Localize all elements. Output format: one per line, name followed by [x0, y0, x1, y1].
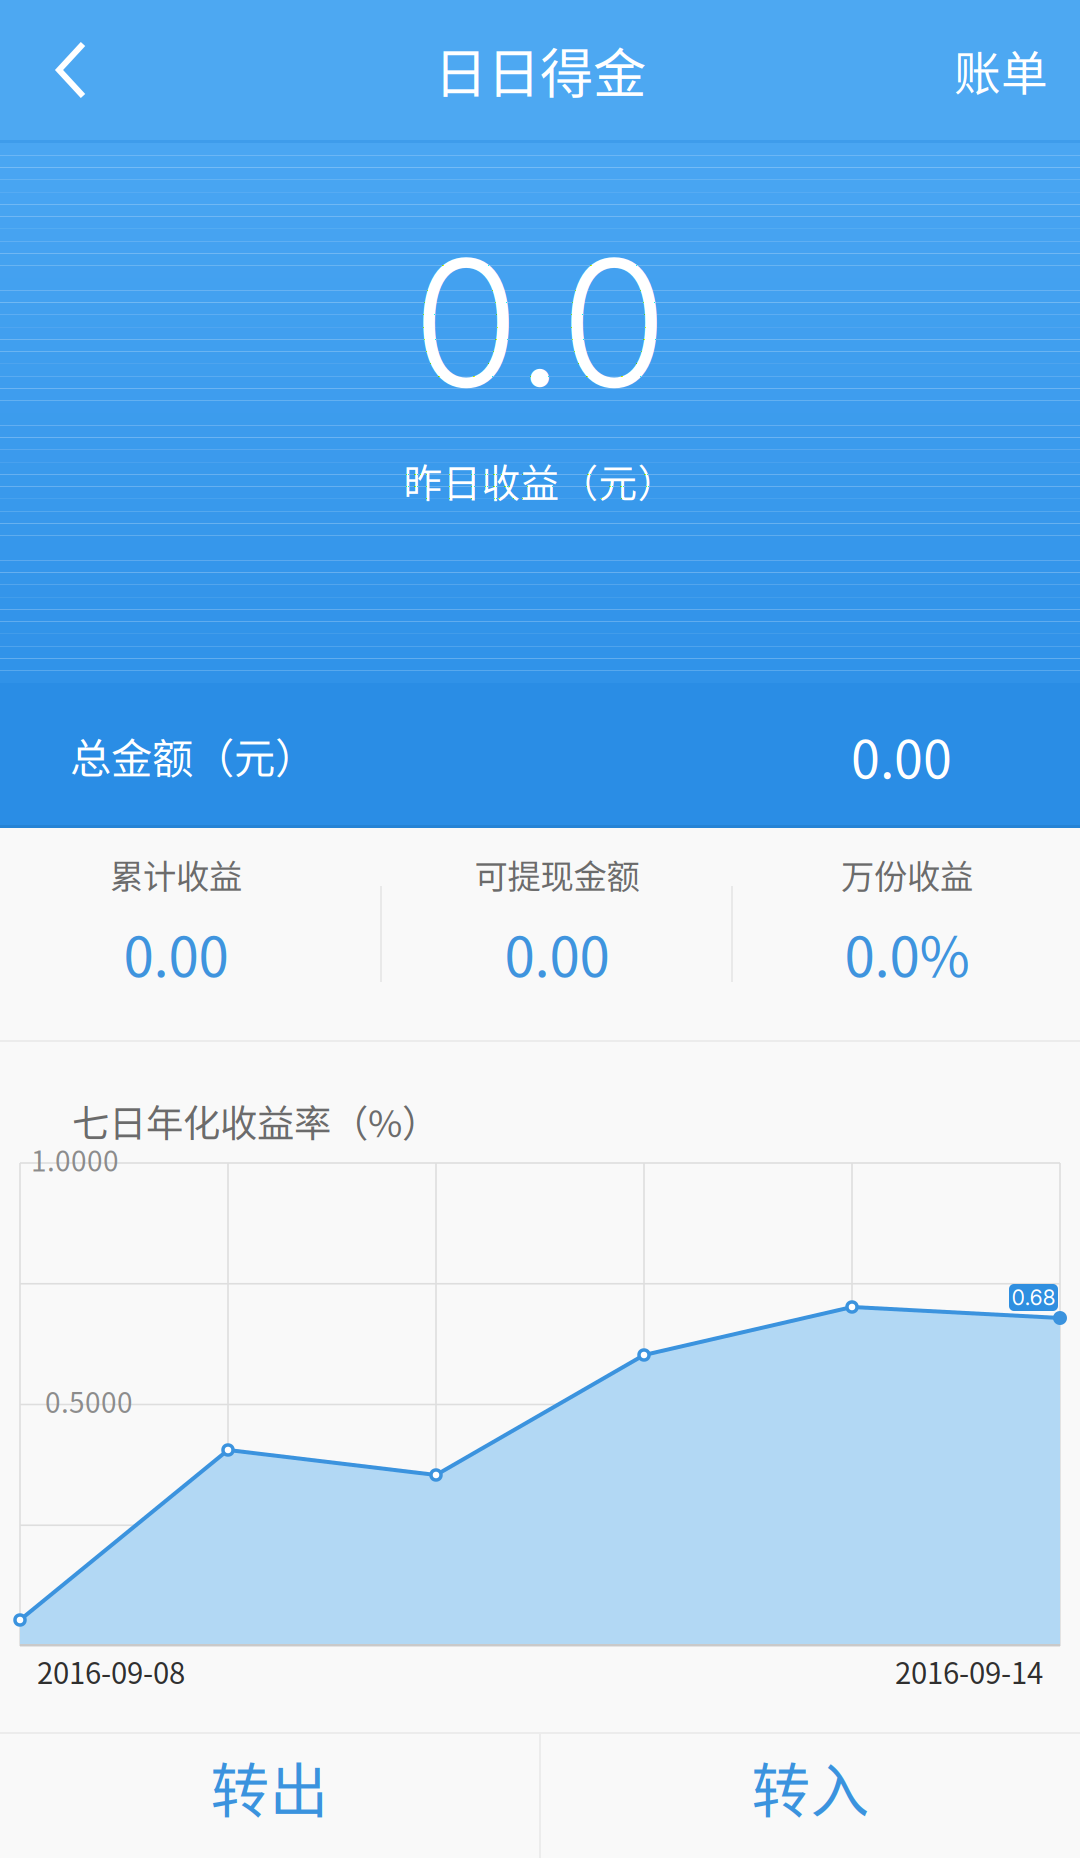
staticText: 转出 — [210, 1744, 328, 1829]
button[interactable]: 转出 — [0, 1734, 539, 1858]
staticText: 0.00 — [504, 913, 609, 992]
staticText: 七日年化收益率（%） — [72, 1094, 439, 1148]
button[interactable]: Back — [0, 0, 127, 140]
staticText: 0.00 — [123, 913, 228, 992]
staticText: 1.0000 — [31, 1139, 119, 1179]
staticText: 总金额（元） — [70, 726, 316, 785]
staticText: 万份收益 — [841, 850, 973, 898]
staticText: 0.00 — [851, 718, 952, 793]
staticText: 0.5000 — [45, 1380, 133, 1421]
staticText: 可提现金额 — [474, 850, 639, 898]
button[interactable]: 转入 — [541, 1734, 1080, 1858]
staticText: 昨日收益（元） — [403, 452, 676, 508]
staticText: 累计收益 — [110, 850, 242, 898]
staticText: 2016-09-08 — [37, 1650, 185, 1692]
staticText: 2016-09-14 — [895, 1650, 1043, 1692]
staticText: 0.0% — [844, 913, 969, 992]
staticText: 账单 — [954, 36, 1048, 104]
staticText: 转入 — [751, 1744, 869, 1829]
staticText: 0.68 — [1011, 1285, 1055, 1310]
staticText: 0.0 — [412, 217, 668, 428]
staticText: 日日得金 — [434, 31, 646, 109]
button[interactable]: 账单 — [954, 0, 1080, 140]
